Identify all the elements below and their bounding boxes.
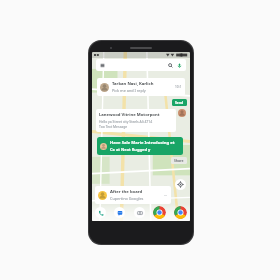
staticText: After the board — [110, 189, 143, 195]
button[interactable]: Chrome — [174, 206, 187, 219]
staticText: Tarkan Nasi, Karlich — [112, 81, 154, 87]
button[interactable]: Tarkan Nasi, Karlich — [97, 78, 185, 96]
button[interactable]: Lanewood Vitrine Motorpont — [96, 109, 176, 132]
button[interactable]: Photos — [153, 206, 166, 219]
button[interactable]: Have Sale Marie Introducing et — [97, 137, 183, 155]
button[interactable]: Send — [172, 99, 187, 106]
staticText: Send — [175, 100, 184, 105]
staticText: Share — [174, 158, 184, 163]
button[interactable]: Share — [171, 157, 187, 164]
button[interactable]: Messages — [114, 207, 125, 218]
staticText: 10:1 — [175, 85, 182, 89]
button[interactable]: After the board — [95, 186, 171, 204]
staticText: Too Text Message — [99, 124, 128, 129]
staticText: Lanewood Vitrine Motorpont — [99, 112, 160, 118]
staticText: ··· — [164, 193, 168, 198]
staticText: Have Sale Marie Introducing et — [110, 140, 175, 146]
button[interactable]: Phone — [95, 207, 106, 218]
staticText: Cx at Next Rugged y — [110, 147, 151, 152]
button[interactable] — [96, 59, 186, 71]
button[interactable]: My location — [175, 179, 186, 190]
button[interactable]: Camera — [134, 207, 145, 218]
staticText: Hello ya Street city Steels Ali 4714 — [99, 119, 153, 124]
staticText: Pick me and I reply — [112, 88, 146, 93]
staticText: Cupertino Googles — [110, 196, 144, 201]
